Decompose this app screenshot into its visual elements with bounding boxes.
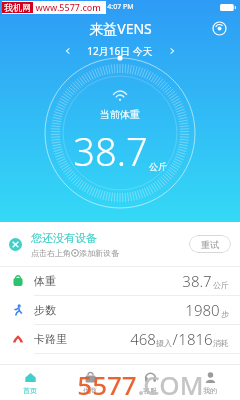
button[interactable]: 体重: [0, 267, 240, 295]
staticText: 首页: [23, 386, 37, 395]
staticText: 12月16日 今天: [87, 44, 153, 58]
staticText: 38.7: [73, 125, 148, 177]
staticText: 5577: [77, 367, 137, 397]
staticText: 4:07 PM: [107, 2, 134, 12]
button[interactable]: 步数: [0, 296, 240, 324]
button[interactable]: 前一天: [59, 42, 77, 60]
staticText: 当前体重: [100, 108, 140, 121]
button[interactable]: 首页: [0, 364, 60, 400]
staticText: 您还没有设备: [31, 231, 97, 245]
button[interactable]: 后一天: [163, 42, 181, 60]
staticText: 步数: [34, 303, 56, 317]
button[interactable]: 您还没有设备: [0, 222, 240, 266]
staticText: 来益VENS: [89, 19, 152, 38]
staticText: 我机网: [4, 2, 31, 13]
staticText: 摄入: [156, 338, 172, 348]
staticText: 卡路里: [34, 332, 67, 346]
staticText: 1816: [178, 329, 213, 349]
staticText: Service 令: [3, 2, 36, 12]
staticText: .COM: [137, 367, 204, 397]
staticText: 点击右上角: [31, 248, 71, 258]
staticText: 重试: [201, 239, 219, 250]
staticText: 468: [130, 329, 156, 349]
button[interactable]: 重试: [189, 235, 231, 253]
staticText: 体重: [34, 274, 56, 288]
staticText: /: [172, 329, 178, 349]
staticText: 38.7: [182, 271, 212, 291]
staticText: www.5577.com: [33, 1, 101, 13]
staticText: 1980: [185, 300, 220, 320]
staticText: 我的: [203, 386, 217, 395]
button[interactable]: 添加设备: [208, 17, 230, 39]
button[interactable]: 优商: [60, 364, 120, 400]
button[interactable]: 我的: [180, 364, 240, 400]
staticText: 客服: [143, 386, 157, 395]
staticText: 公斤: [149, 161, 167, 172]
button[interactable]: 客服: [120, 364, 180, 400]
staticText: 优商: [83, 386, 97, 395]
button[interactable]: 卡路里: [0, 325, 240, 353]
staticText: 步: [221, 309, 229, 319]
staticText: 消耗: [213, 338, 229, 348]
staticText: 公斤: [213, 280, 229, 290]
staticText: 添加新设备: [79, 248, 119, 258]
